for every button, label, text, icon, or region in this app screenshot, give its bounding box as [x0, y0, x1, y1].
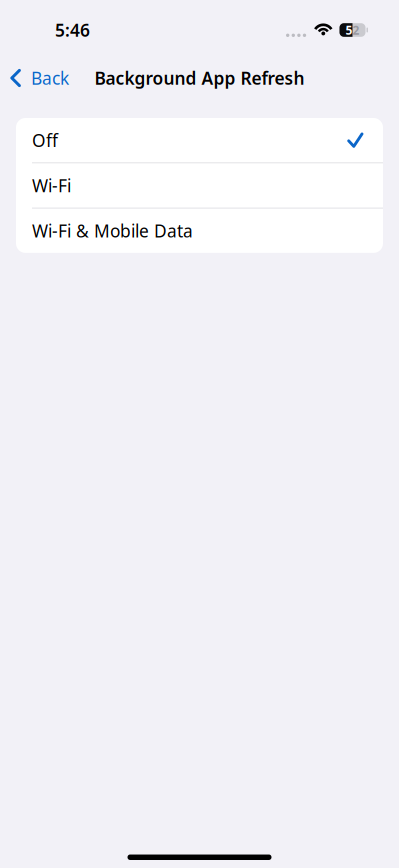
- button[interactable]: Wi-Fi: [16, 163, 383, 208]
- staticText: Wi-Fi: [32, 174, 71, 197]
- staticText: Back: [31, 66, 69, 89]
- staticText: 5:46: [55, 18, 90, 41]
- staticText: Off: [32, 129, 58, 152]
- staticText: Wi-Fi & Mobile Data: [32, 219, 193, 242]
- button[interactable]: Back: [0, 56, 81, 100]
- staticText: 5: [345, 22, 352, 38]
- staticText: Background App Refresh: [94, 66, 304, 89]
- staticText: 2: [352, 22, 359, 38]
- button[interactable]: Wi-Fi & Mobile Data: [16, 209, 383, 253]
- button[interactable]: Off: [16, 118, 383, 162]
